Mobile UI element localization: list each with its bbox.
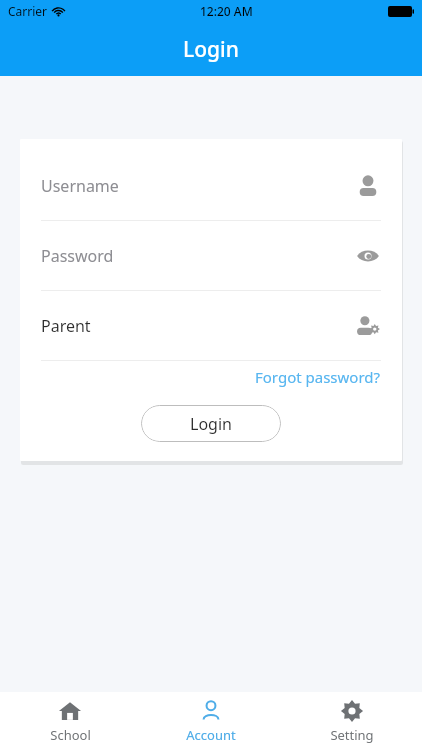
staticText: Parent [41, 315, 91, 337]
staticText: Forgot password? [255, 367, 381, 387]
staticText: Setting [330, 726, 374, 744]
staticText: Carrier [8, 3, 48, 19]
staticText: 12:20 AM [200, 3, 253, 19]
button[interactable]: Parent [41, 291, 381, 360]
staticText: School [50, 726, 91, 744]
button[interactable]: School [0, 692, 140, 750]
staticText: Password [41, 245, 114, 267]
staticText: Login [190, 413, 232, 435]
staticText: Login [183, 35, 239, 64]
button[interactable]: Password [41, 221, 381, 290]
staticText: Username [41, 175, 119, 197]
button[interactable]: Account [140, 692, 281, 750]
button[interactable]: Setting [281, 692, 422, 750]
staticText: Account [186, 726, 236, 744]
button[interactable]: Login [141, 405, 281, 442]
button[interactable]: Username [41, 151, 381, 220]
button[interactable]: Forgot password? [41, 367, 381, 387]
